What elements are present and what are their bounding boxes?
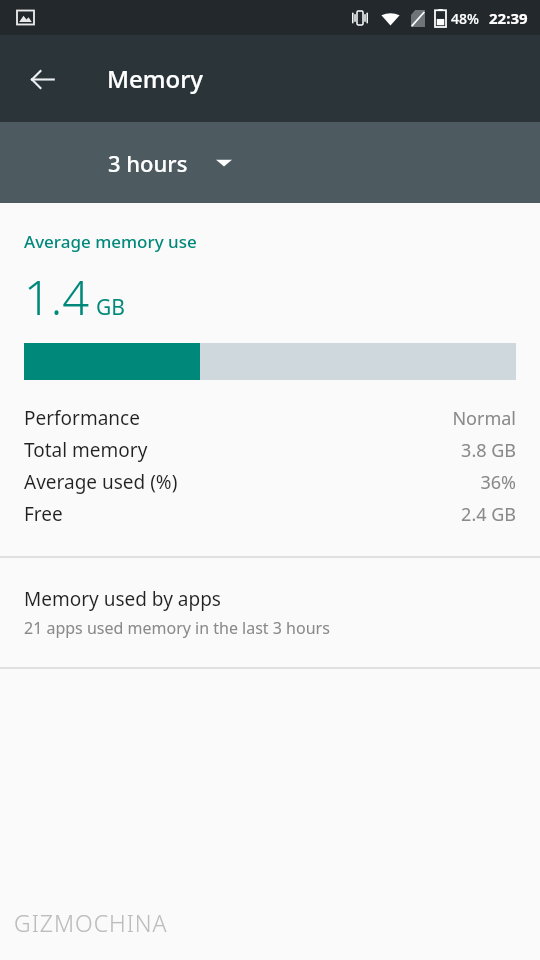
staticText: 36% bbox=[480, 470, 516, 495]
staticText: 48% bbox=[451, 9, 479, 28]
staticText: 21 apps used memory in the last 3 hours bbox=[24, 617, 330, 639]
staticText: Performance bbox=[24, 405, 140, 431]
staticText: Total memory bbox=[24, 437, 148, 463]
staticText: 3 hours bbox=[108, 148, 188, 178]
staticText: GB bbox=[96, 293, 125, 322]
button[interactable]: Memory used by apps bbox=[0, 558, 540, 667]
staticText: 1.4 bbox=[24, 265, 90, 329]
button[interactable]: Back bbox=[17, 54, 67, 104]
staticText: Normal bbox=[452, 406, 516, 431]
button[interactable]: 3 hours bbox=[100, 140, 240, 186]
staticText: Memory bbox=[107, 62, 204, 95]
staticText: Free bbox=[24, 501, 63, 527]
staticText: GIZMOCHINA bbox=[14, 907, 168, 938]
staticText: 2.4 GB bbox=[461, 502, 516, 527]
staticText: Average used (%) bbox=[24, 469, 178, 495]
staticText: Average memory use bbox=[24, 230, 197, 253]
staticText: 3.8 GB bbox=[461, 438, 516, 463]
staticText: Memory used by apps bbox=[24, 586, 221, 612]
staticText: 22:39 bbox=[489, 8, 528, 28]
